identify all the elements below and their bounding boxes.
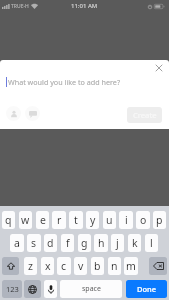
- button[interactable]: g: [78, 234, 91, 252]
- button[interactable]: [44, 280, 57, 298]
- button[interactable]: n: [108, 257, 121, 275]
- staticText: w: [21, 213, 30, 227]
- button[interactable]: y: [86, 211, 99, 229]
- button[interactable]: c: [57, 257, 71, 275]
- button[interactable]: m: [124, 257, 138, 275]
- button[interactable]: b: [91, 257, 104, 275]
- button[interactable]: x: [41, 257, 54, 275]
- staticText: y: [90, 213, 96, 227]
- staticText: m: [126, 259, 136, 273]
- staticText: k: [132, 236, 138, 250]
- staticText: e: [40, 213, 46, 227]
- button[interactable]: [2, 257, 19, 275]
- staticText: x: [45, 259, 51, 273]
- button[interactable]: a: [10, 234, 24, 252]
- staticText: What would you like to add here?: [8, 77, 121, 87]
- button[interactable]: 123: [2, 280, 22, 298]
- staticText: s: [31, 236, 37, 250]
- button[interactable]: o: [136, 211, 150, 229]
- staticText: 11:01 AM: [71, 2, 98, 10]
- button[interactable]: s: [27, 234, 41, 252]
- button[interactable]: t: [69, 211, 83, 229]
- staticText: space: [82, 284, 101, 294]
- button[interactable]: i: [119, 211, 133, 229]
- button[interactable]: space: [60, 280, 122, 298]
- button[interactable]: Add note: [25, 106, 40, 121]
- button[interactable]: d: [44, 234, 57, 252]
- staticText: b: [94, 259, 101, 273]
- staticText: p: [156, 213, 163, 227]
- button[interactable]: q: [2, 211, 15, 229]
- button[interactable]: [24, 280, 41, 298]
- button[interactable]: w: [19, 211, 32, 229]
- staticText: v: [78, 259, 84, 273]
- button[interactable]: h: [94, 234, 108, 252]
- staticText: l: [150, 236, 153, 250]
- staticText: o: [140, 213, 147, 227]
- button[interactable]: v: [74, 257, 87, 275]
- staticText: u: [106, 213, 113, 227]
- staticText: f: [66, 236, 70, 250]
- staticText: 123: [6, 284, 19, 294]
- staticText: d: [47, 236, 54, 250]
- staticText: h: [98, 236, 105, 250]
- button[interactable]: [149, 257, 167, 275]
- staticText: t: [74, 213, 78, 227]
- staticText: i: [125, 213, 128, 227]
- staticText: a: [14, 236, 20, 250]
- staticText: g: [81, 236, 88, 250]
- staticText: c: [61, 259, 67, 273]
- button[interactable]: k: [128, 234, 141, 252]
- button[interactable]: z: [24, 257, 37, 275]
- staticText: r: [57, 213, 62, 227]
- button[interactable]: r: [52, 211, 66, 229]
- button[interactable]: j: [111, 234, 124, 252]
- staticText: q: [5, 213, 12, 227]
- button[interactable]: u: [103, 211, 116, 229]
- button[interactable]: Done: [126, 280, 167, 298]
- staticText: n: [111, 259, 118, 273]
- button[interactable]: p: [153, 211, 166, 229]
- button[interactable]: Close: [152, 61, 166, 75]
- button[interactable]: Tag people: [6, 106, 21, 121]
- button[interactable]: e: [36, 211, 49, 229]
- staticText: Create: [133, 110, 157, 120]
- staticText: j: [116, 236, 119, 250]
- staticText: TRUE-H: [11, 3, 29, 10]
- staticText: z: [28, 259, 33, 273]
- button[interactable]: l: [145, 234, 158, 252]
- staticText: Done: [137, 284, 157, 294]
- button[interactable]: f: [61, 234, 74, 252]
